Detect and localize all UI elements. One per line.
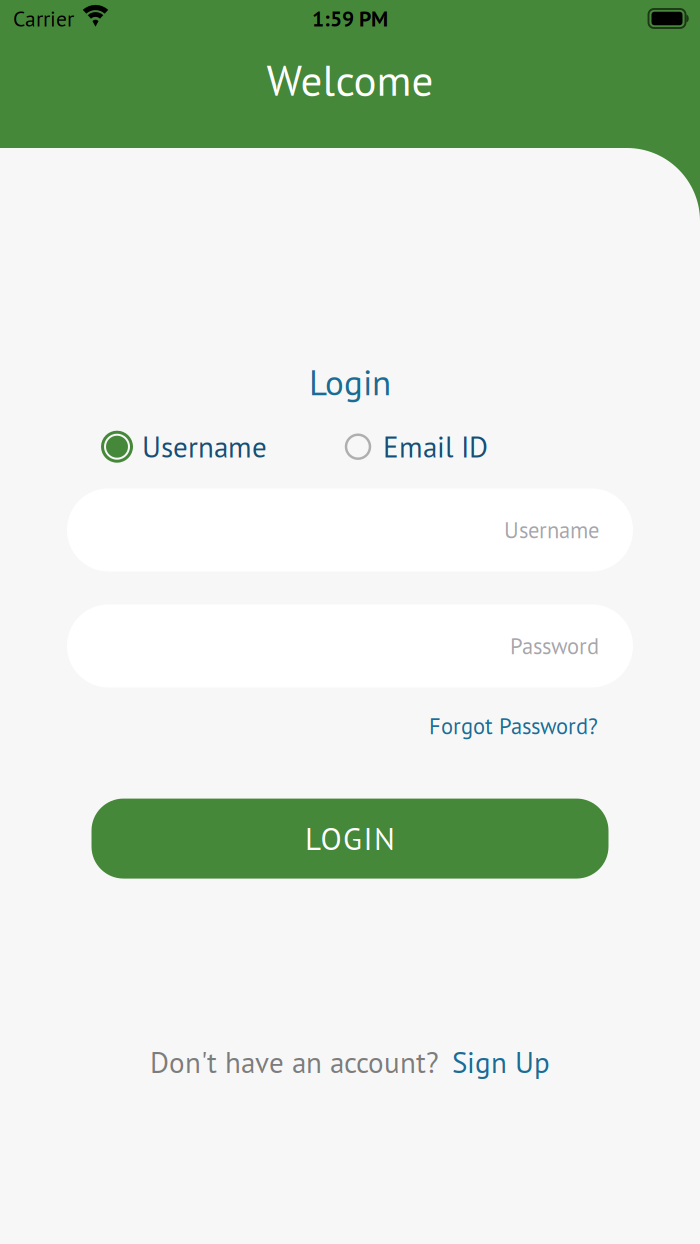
button[interactable]: Username: [101, 428, 267, 465]
staticText: Welcome: [266, 52, 433, 108]
staticText: Carrier: [13, 5, 74, 32]
staticText: 1:59 PM: [312, 5, 388, 32]
button[interactable]: Forgot Password?: [429, 711, 598, 741]
staticText: Username: [504, 515, 599, 544]
button[interactable]: Sign Up: [452, 1044, 550, 1081]
staticText: Username: [142, 428, 267, 465]
button[interactable]: Email ID: [342, 428, 488, 465]
staticText: Email ID: [383, 428, 488, 465]
staticText: Sign Up: [452, 1044, 550, 1081]
staticText: Password: [510, 631, 599, 660]
button[interactable]: LOGIN: [91, 799, 608, 879]
staticText: Forgot Password?: [429, 711, 598, 741]
staticText: Don't have an account?: [150, 1044, 439, 1081]
staticText: Login: [309, 360, 391, 405]
staticText: LOGIN: [305, 818, 395, 859]
